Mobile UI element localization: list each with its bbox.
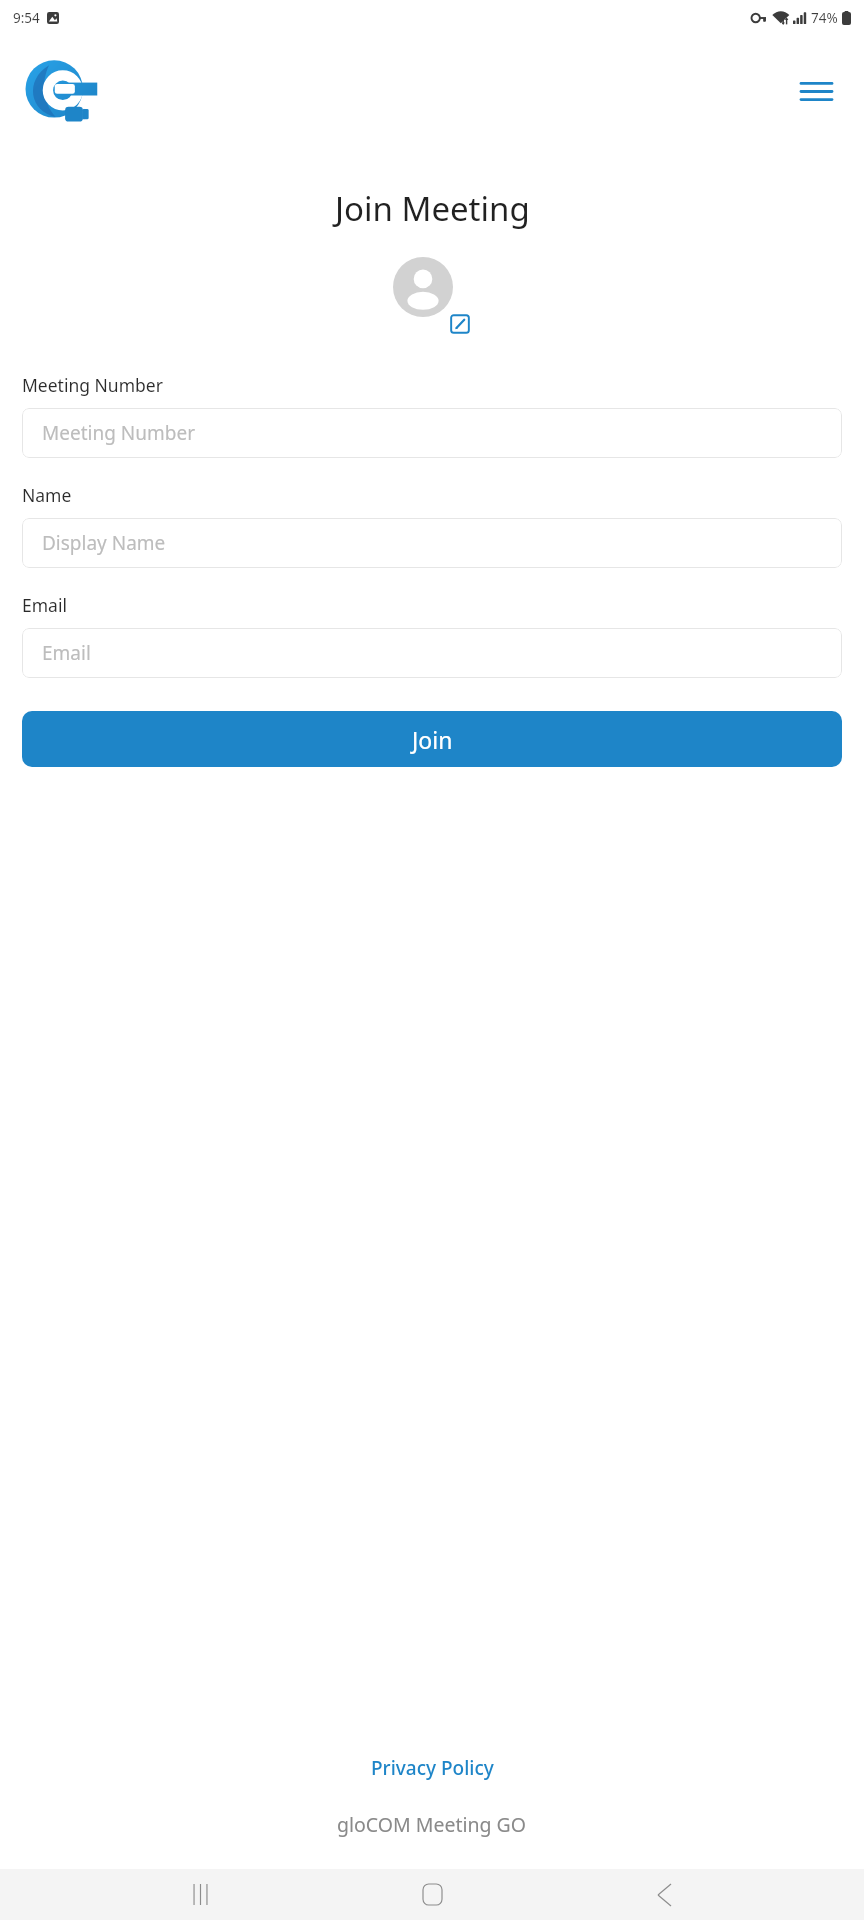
button[interactable]: Menu bbox=[788, 63, 844, 119]
button[interactable]: Join bbox=[22, 711, 842, 767]
staticText: Display Name bbox=[42, 530, 166, 556]
button[interactable]: Display Name bbox=[22, 518, 842, 568]
staticText: gloCOM Meeting GO bbox=[337, 1811, 527, 1838]
button[interactable]: Recent apps bbox=[168, 1869, 232, 1920]
staticText: Meeting Number bbox=[22, 373, 163, 397]
staticText: Privacy Policy bbox=[371, 1755, 494, 1781]
staticText: Meeting Number bbox=[42, 420, 195, 446]
button[interactable]: Home bbox=[400, 1869, 464, 1920]
staticText: 74% bbox=[811, 9, 838, 27]
button[interactable]: Edit profile picture bbox=[393, 257, 471, 335]
staticText: Email bbox=[42, 640, 91, 666]
staticText: Join Meeting bbox=[335, 186, 530, 231]
button[interactable]: Email bbox=[22, 628, 842, 678]
button[interactable]: Meeting Number bbox=[22, 408, 842, 458]
staticText: Name bbox=[22, 483, 72, 507]
button[interactable]: gloCOM Meeting GO logo bbox=[22, 56, 92, 126]
button[interactable]: Privacy Policy bbox=[357, 1749, 508, 1787]
staticText: Email bbox=[22, 593, 67, 617]
staticText: 9:54 bbox=[13, 9, 40, 27]
button[interactable]: Back bbox=[632, 1869, 696, 1920]
staticText: Join bbox=[412, 724, 453, 755]
